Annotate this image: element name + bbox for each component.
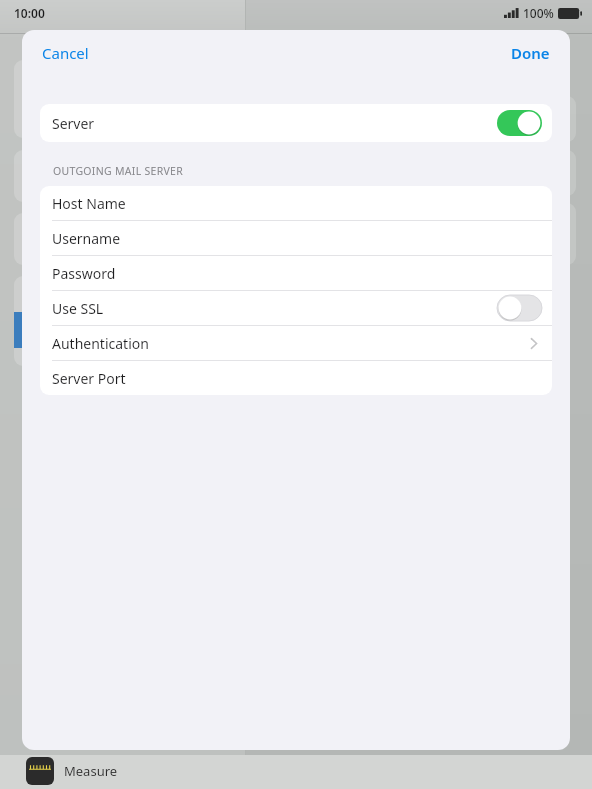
button[interactable]: Server bbox=[40, 104, 552, 142]
staticText: Authentication bbox=[52, 334, 149, 353]
button[interactable]: Cancel bbox=[32, 37, 99, 69]
button[interactable]: Server Port bbox=[40, 360, 552, 395]
staticText: OUTGOING MAIL SERVER bbox=[53, 164, 184, 178]
staticText: Use SSL bbox=[52, 299, 104, 318]
button[interactable]: Username bbox=[40, 220, 552, 255]
button[interactable]: Host Name bbox=[40, 186, 552, 220]
staticText: Cancel bbox=[42, 43, 89, 63]
staticText: Username bbox=[52, 229, 121, 248]
staticText: Done bbox=[511, 43, 550, 63]
staticText: 10:00 bbox=[14, 5, 45, 21]
button[interactable]: Use SSL toggle bbox=[497, 295, 542, 321]
staticText: 100% bbox=[523, 5, 554, 21]
button[interactable]: Done bbox=[501, 37, 560, 69]
button[interactable]: Server enabled toggle bbox=[497, 110, 542, 136]
staticText: Host Name bbox=[52, 194, 126, 213]
staticText: Measure bbox=[64, 762, 118, 780]
staticText: Password bbox=[52, 264, 116, 283]
button[interactable]: Use SSL bbox=[40, 290, 552, 325]
staticText: Server bbox=[52, 114, 95, 133]
staticText: Server Port bbox=[52, 369, 126, 388]
button[interactable]: Password bbox=[40, 255, 552, 290]
button[interactable]: Authentication bbox=[40, 325, 552, 360]
